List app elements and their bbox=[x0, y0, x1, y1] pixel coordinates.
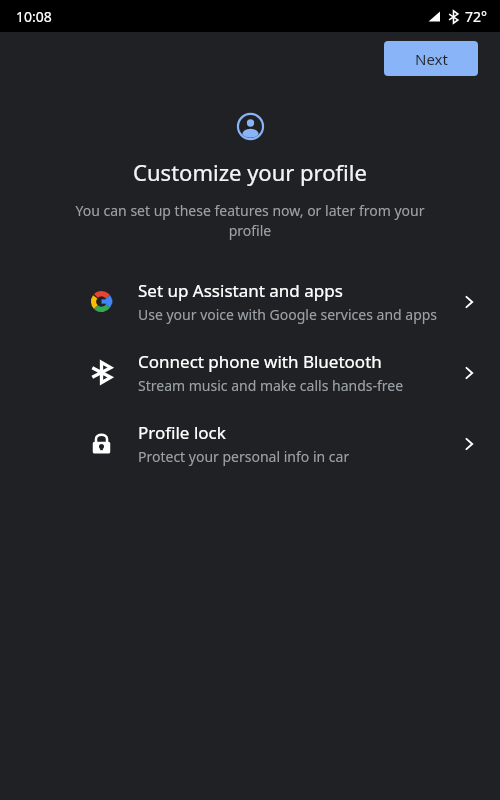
other: Open Connect phone with Bluetooth bbox=[461, 365, 477, 381]
staticText: Customize your profile bbox=[0, 157, 500, 187]
other: Bluetooth bbox=[90, 361, 113, 384]
button[interactable]: Bluetooth bbox=[0, 346, 500, 399]
other: Lock bbox=[90, 432, 113, 455]
button[interactable]: Google bbox=[0, 275, 500, 328]
staticText: Protect your personal info in car bbox=[138, 447, 350, 466]
staticText: Set up Assistant and apps bbox=[138, 279, 343, 302]
staticText: Profile lock bbox=[138, 421, 226, 444]
button[interactable]: Lock bbox=[0, 417, 500, 470]
staticText: Connect phone with Bluetooth bbox=[138, 350, 382, 373]
other: Open Set up Assistant and apps bbox=[461, 294, 477, 310]
staticText: 72° bbox=[465, 7, 488, 26]
staticText: Next bbox=[415, 49, 448, 69]
other: Google bbox=[90, 290, 113, 313]
staticText: You can set up these features now, or la… bbox=[62, 201, 438, 241]
staticText: 10:08 bbox=[16, 7, 52, 26]
other: Open Profile lock bbox=[461, 436, 477, 452]
staticText: Use your voice with Google services and … bbox=[138, 305, 438, 324]
staticText: Stream music and make calls hands-free bbox=[138, 376, 404, 395]
button[interactable]: Next bbox=[384, 41, 478, 76]
